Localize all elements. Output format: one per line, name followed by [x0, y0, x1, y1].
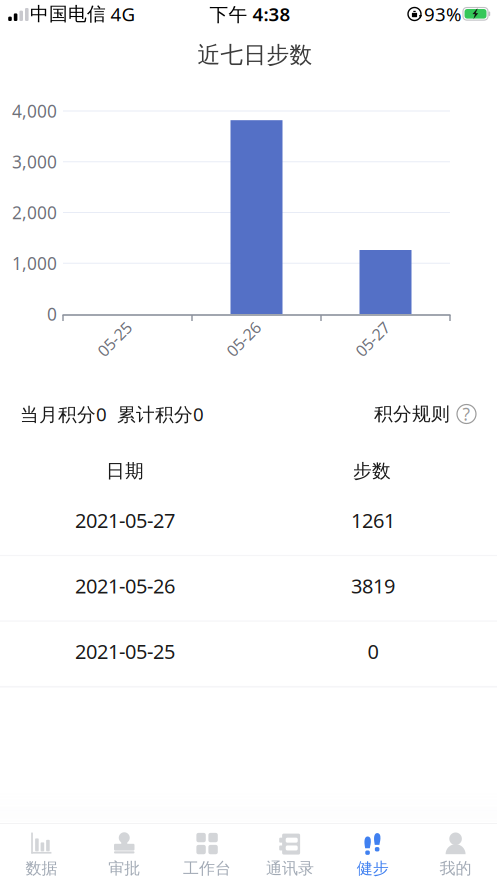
- button[interactable]: 工作台: [166, 821, 248, 883]
- staticText: 数据: [25, 859, 57, 878]
- staticText: 我的: [440, 859, 472, 878]
- staticText: 3819: [351, 572, 395, 599]
- button[interactable]: 健步: [331, 821, 414, 883]
- staticText: 0: [367, 638, 378, 665]
- staticText: 健步: [357, 859, 389, 878]
- button[interactable]: 数据: [0, 821, 83, 883]
- staticText: 4G: [110, 2, 135, 26]
- staticText: 步数: [353, 459, 391, 482]
- staticText: 0: [47, 302, 57, 325]
- staticText: 日期: [106, 459, 144, 482]
- staticText: 2021-05-26: [75, 572, 175, 599]
- staticText: 通讯录: [266, 859, 314, 878]
- button[interactable]: 积分规则: [374, 402, 476, 425]
- staticText: 4,000: [12, 99, 57, 122]
- staticText: 2021-05-27: [75, 507, 175, 534]
- staticText: 93%: [424, 2, 462, 26]
- staticText: 下午 4:38: [209, 2, 290, 26]
- staticText: 1,000: [12, 252, 57, 275]
- staticText: 2,000: [12, 201, 57, 224]
- button[interactable]: 审批: [83, 821, 166, 883]
- button[interactable]: 通讯录: [248, 821, 331, 883]
- staticText: 工作台: [183, 859, 231, 878]
- staticText: 05-27: [352, 328, 393, 350]
- staticText: 1261: [351, 507, 395, 534]
- staticText: 近七日步数: [197, 41, 312, 69]
- staticText: 中国电信: [30, 2, 106, 25]
- staticText: 05-25: [94, 328, 135, 350]
- staticText: 积分规则: [374, 402, 450, 425]
- staticText: 05-26: [223, 328, 264, 350]
- staticText: 当月积分0 累计积分0: [20, 402, 204, 426]
- staticText: ?: [462, 402, 470, 425]
- staticText: 审批: [108, 859, 140, 878]
- staticText: 3,000: [12, 150, 57, 173]
- staticText: 2021-05-25: [75, 638, 175, 665]
- button[interactable]: 我的: [414, 821, 497, 883]
